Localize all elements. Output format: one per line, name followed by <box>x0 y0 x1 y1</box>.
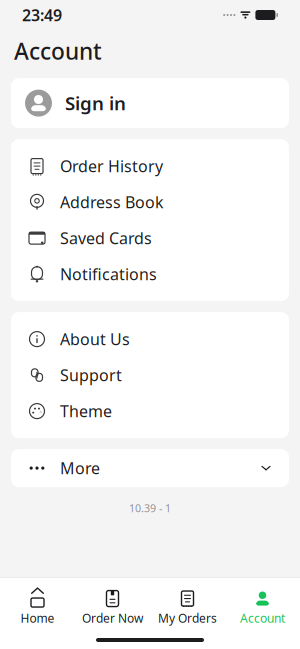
button[interactable]: Theme <box>11 393 289 429</box>
button[interactable]: Saved Cards <box>11 220 289 256</box>
staticText: 23:49 <box>22 4 62 26</box>
staticText: Support <box>60 364 122 386</box>
button[interactable]: My Orders <box>150 584 225 632</box>
button[interactable]: Notifications <box>11 256 289 292</box>
staticText: Order Now <box>82 610 143 626</box>
button[interactable]: About Us <box>11 321 289 357</box>
button[interactable]: Home <box>0 584 75 632</box>
staticText: 10.39 - 1 <box>129 501 171 515</box>
button[interactable]: Sign in <box>11 78 289 128</box>
staticText: Notifications <box>60 263 157 285</box>
staticText: Theme <box>60 400 112 422</box>
staticText: Account <box>240 610 285 626</box>
button[interactable]: Address Book <box>11 184 289 220</box>
staticText: Saved Cards <box>60 227 152 249</box>
staticText: My Orders <box>158 610 217 626</box>
staticText: More <box>60 457 100 479</box>
staticText: Sign in <box>65 91 126 115</box>
staticText: Account <box>14 36 102 66</box>
staticText: Address Book <box>60 191 164 213</box>
button[interactable]: Order History <box>11 148 289 184</box>
button[interactable]: More <box>11 449 289 487</box>
button[interactable]: Order Now <box>75 584 150 632</box>
button[interactable]: Support <box>11 357 289 393</box>
button[interactable]: Account <box>225 584 300 632</box>
staticText: About Us <box>60 328 130 350</box>
staticText: Order History <box>60 155 163 177</box>
staticText: Home <box>20 610 54 626</box>
